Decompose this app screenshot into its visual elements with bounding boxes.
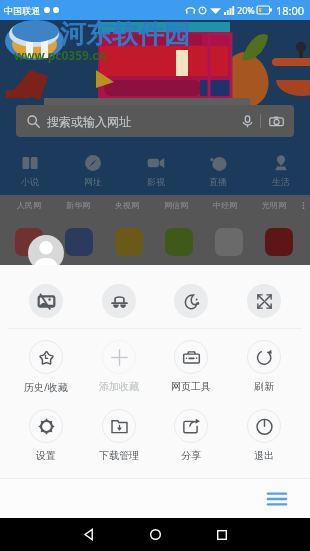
staticText: 网址 [84, 176, 102, 187]
button[interactable]: 小说 [2, 147, 58, 187]
button[interactable]: 搜狐 [115, 228, 143, 256]
button[interactable]: Incognito [102, 284, 136, 318]
staticText: 刷新 [254, 380, 274, 393]
staticText: 小说 [21, 176, 39, 187]
staticText: www.pc0359.cn [14, 47, 107, 63]
button[interactable]: 设置 [19, 409, 73, 462]
staticText: 光明网 [262, 200, 286, 210]
staticText: 网页工具 [171, 380, 211, 393]
staticText: 网信网 [164, 200, 188, 210]
staticText: 生活 [272, 176, 290, 187]
button[interactable]: No images [29, 284, 63, 318]
button[interactable]: 分享 [164, 409, 218, 462]
button[interactable]: 刷新 [237, 340, 291, 393]
staticText: 搜索或输入网址 [47, 114, 131, 129]
staticText: 河东软件园 [60, 18, 190, 51]
button[interactable]: 添加收藏 [92, 340, 146, 393]
staticText: 央视网 [115, 200, 139, 210]
button[interactable]: 历史/收藏 [19, 340, 73, 394]
staticText: 影视 [147, 176, 165, 187]
button[interactable]: Recents [202, 518, 242, 551]
button[interactable]: 人民网 [4, 196, 53, 214]
staticText: 添加收藏 [99, 380, 139, 393]
staticText: 直播 [209, 176, 227, 187]
button[interactable]: Back [68, 518, 108, 551]
button[interactable]: More [298, 196, 308, 214]
button[interactable]: 百度 [65, 228, 93, 256]
button[interactable]: 央视网 [102, 196, 151, 214]
button[interactable]: 光明网 [249, 196, 298, 214]
staticText: 历史/收藏 [24, 380, 68, 394]
button[interactable]: 影视 [128, 147, 184, 187]
button[interactable]: 网址 [65, 147, 121, 187]
button[interactable]: 新浪 [15, 228, 43, 256]
staticText: 18:00 [276, 3, 305, 18]
staticText: 设置 [36, 449, 56, 462]
button[interactable]: 生活 [253, 147, 309, 187]
button[interactable]: Camera search [266, 111, 286, 131]
button[interactable]: Home [135, 518, 175, 551]
staticText: 中经网 [213, 200, 237, 210]
button[interactable]: 搜索或输入网址 [16, 105, 294, 137]
staticText: 中国联通 [4, 5, 40, 16]
button[interactable]: Voice search [237, 111, 257, 131]
button[interactable]: Login [28, 235, 64, 271]
button[interactable]: 中经网 [200, 196, 249, 214]
button[interactable]: 58同城 [215, 228, 243, 256]
button[interactable]: 下载管理 [92, 409, 146, 462]
button[interactable]: 网信网 [151, 196, 200, 214]
button[interactable]: 新华网 [53, 196, 102, 214]
button[interactable]: 网页工具 [164, 340, 218, 393]
button[interactable]: 退出 [237, 409, 291, 462]
staticText: 20% [237, 4, 255, 16]
button[interactable]: 直播 [190, 147, 246, 187]
button[interactable]: Fullscreen [247, 284, 281, 318]
button[interactable]: 赶集 [165, 228, 193, 256]
staticText: 下载管理 [99, 449, 139, 462]
button[interactable]: Night mode [174, 284, 208, 318]
staticText: 分享 [181, 449, 201, 462]
button[interactable]: Menu [263, 485, 291, 513]
staticText: 退出 [254, 449, 274, 462]
staticText: 人民网 [17, 200, 41, 210]
staticText: 新华网 [66, 200, 90, 210]
button[interactable]: 天猫 [265, 228, 293, 256]
